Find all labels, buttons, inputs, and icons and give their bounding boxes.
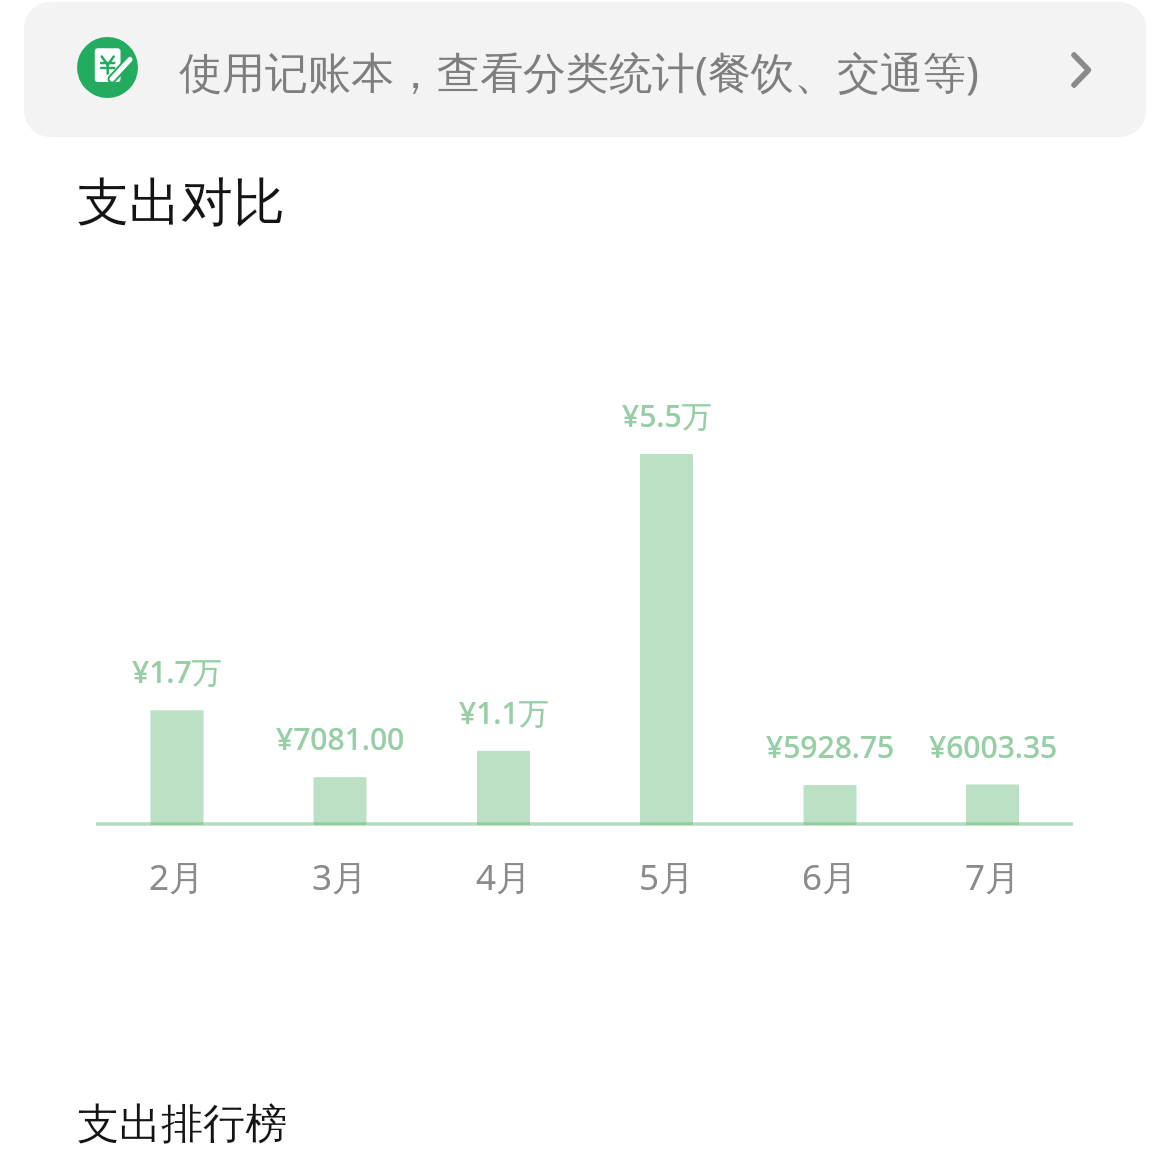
staticText: 2月 bbox=[149, 853, 205, 899]
staticText: 3月 bbox=[312, 853, 368, 899]
staticText: ¥1.7万 bbox=[132, 651, 222, 692]
staticText: ¥1.1万 bbox=[459, 692, 549, 733]
button[interactable]: 使用记账本，查看分类统计(餐饮、交通等) bbox=[24, 2, 1146, 137]
staticText: ¥6003.35 bbox=[929, 726, 1058, 767]
staticText: 6月 bbox=[802, 853, 858, 899]
staticText: 支出排行榜 bbox=[77, 1098, 287, 1151]
staticText: ¥5928.75 bbox=[766, 726, 895, 767]
staticText: 支出对比 bbox=[77, 170, 285, 236]
staticText: 使用记账本，查看分类统计(餐饮、交通等) bbox=[179, 42, 979, 101]
staticText: ¥5.5万 bbox=[622, 395, 712, 436]
staticText: 5月 bbox=[639, 853, 695, 899]
staticText: 4月 bbox=[476, 853, 532, 899]
staticText: 7月 bbox=[965, 853, 1021, 899]
staticText: ¥7081.00 bbox=[276, 718, 405, 759]
